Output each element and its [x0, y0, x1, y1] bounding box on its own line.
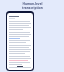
staticText: Human-level transcription [22, 2, 43, 10]
